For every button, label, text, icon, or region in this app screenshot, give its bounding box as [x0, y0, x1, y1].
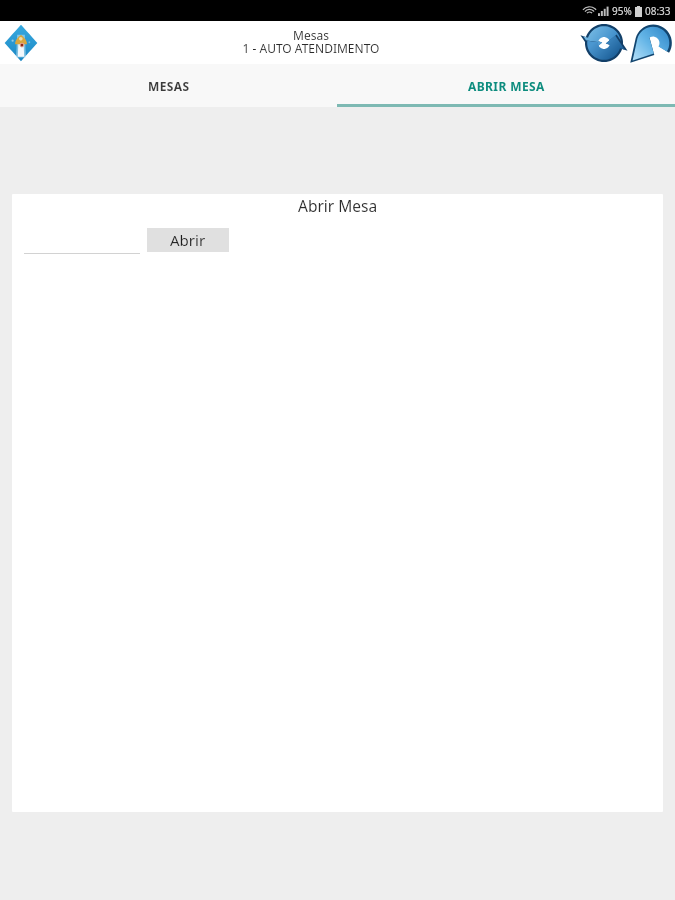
button[interactable]: Abrir — [147, 228, 229, 252]
button[interactable]: Back — [627, 21, 673, 64]
staticText: Mesas — [196, 27, 426, 43]
button[interactable]: ABRIR MESA — [337, 64, 675, 107]
button[interactable]: MESAS — [0, 64, 337, 107]
staticText: 95% — [612, 4, 632, 18]
button[interactable] — [24, 226, 140, 254]
staticText: 08:33 — [645, 4, 671, 18]
button[interactable]: App menu — [1, 23, 41, 63]
staticText: Abrir — [170, 230, 206, 250]
staticText: Abrir Mesa — [298, 195, 378, 216]
button[interactable]: Refresh — [581, 21, 627, 64]
staticText: ABRIR MESA — [468, 78, 545, 94]
staticText: MESAS — [148, 78, 190, 94]
staticText: 1 - AUTO ATENDIMENTO — [196, 40, 426, 56]
